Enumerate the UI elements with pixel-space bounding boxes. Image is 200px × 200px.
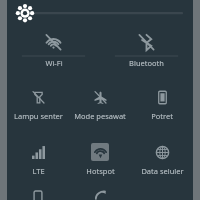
button[interactable]: Brightness	[7, 0, 193, 30]
button[interactable]: Mode pesawat	[69, 82, 131, 137]
staticText: Bluetooth	[129, 58, 164, 68]
staticText: Potret	[151, 111, 173, 121]
button[interactable]: LTE	[7, 137, 69, 185]
staticText: Data seluler	[141, 166, 184, 176]
staticText: Mode pesawat	[74, 111, 126, 121]
staticText: LTE	[32, 166, 45, 176]
staticText: Lampu senter	[14, 111, 63, 121]
button[interactable]: Lampu senter	[7, 82, 69, 137]
staticText: Hotspot	[86, 166, 115, 176]
button[interactable]: Rotate	[7, 185, 69, 200]
button[interactable]: Potret	[131, 82, 193, 137]
staticText: Wi-Fi	[45, 58, 63, 68]
button[interactable]: Data seluler	[131, 137, 193, 185]
button[interactable]: Hotspot	[69, 137, 131, 185]
button[interactable]: Screenshot	[69, 185, 131, 200]
button[interactable]: Wi-Fi	[7, 30, 100, 82]
button[interactable]: Bluetooth	[100, 30, 193, 82]
